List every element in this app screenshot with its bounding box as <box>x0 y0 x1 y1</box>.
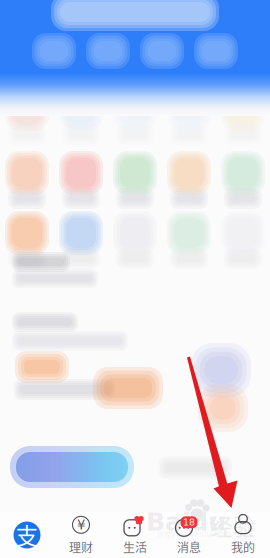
button[interactable]: 18 <box>162 512 216 558</box>
button[interactable]: 我的 <box>216 512 270 558</box>
staticText: 生活 <box>123 538 147 556</box>
button[interactable]: 首页 <box>0 512 54 558</box>
button[interactable]: 生活 <box>108 512 162 558</box>
staticText: 消息 <box>177 538 201 556</box>
staticText: 支 <box>15 518 38 551</box>
staticText: ¥ <box>77 517 85 533</box>
staticText: jingyan.baidu.com <box>157 529 231 538</box>
staticText: 理财 <box>69 538 93 556</box>
staticText: Bai <box>146 507 191 536</box>
button[interactable]: ¥ <box>54 512 108 558</box>
staticText: 经验 <box>210 509 256 542</box>
staticText: du <box>190 507 226 536</box>
staticText: 18 <box>183 517 195 528</box>
staticText: 我的 <box>231 538 255 556</box>
